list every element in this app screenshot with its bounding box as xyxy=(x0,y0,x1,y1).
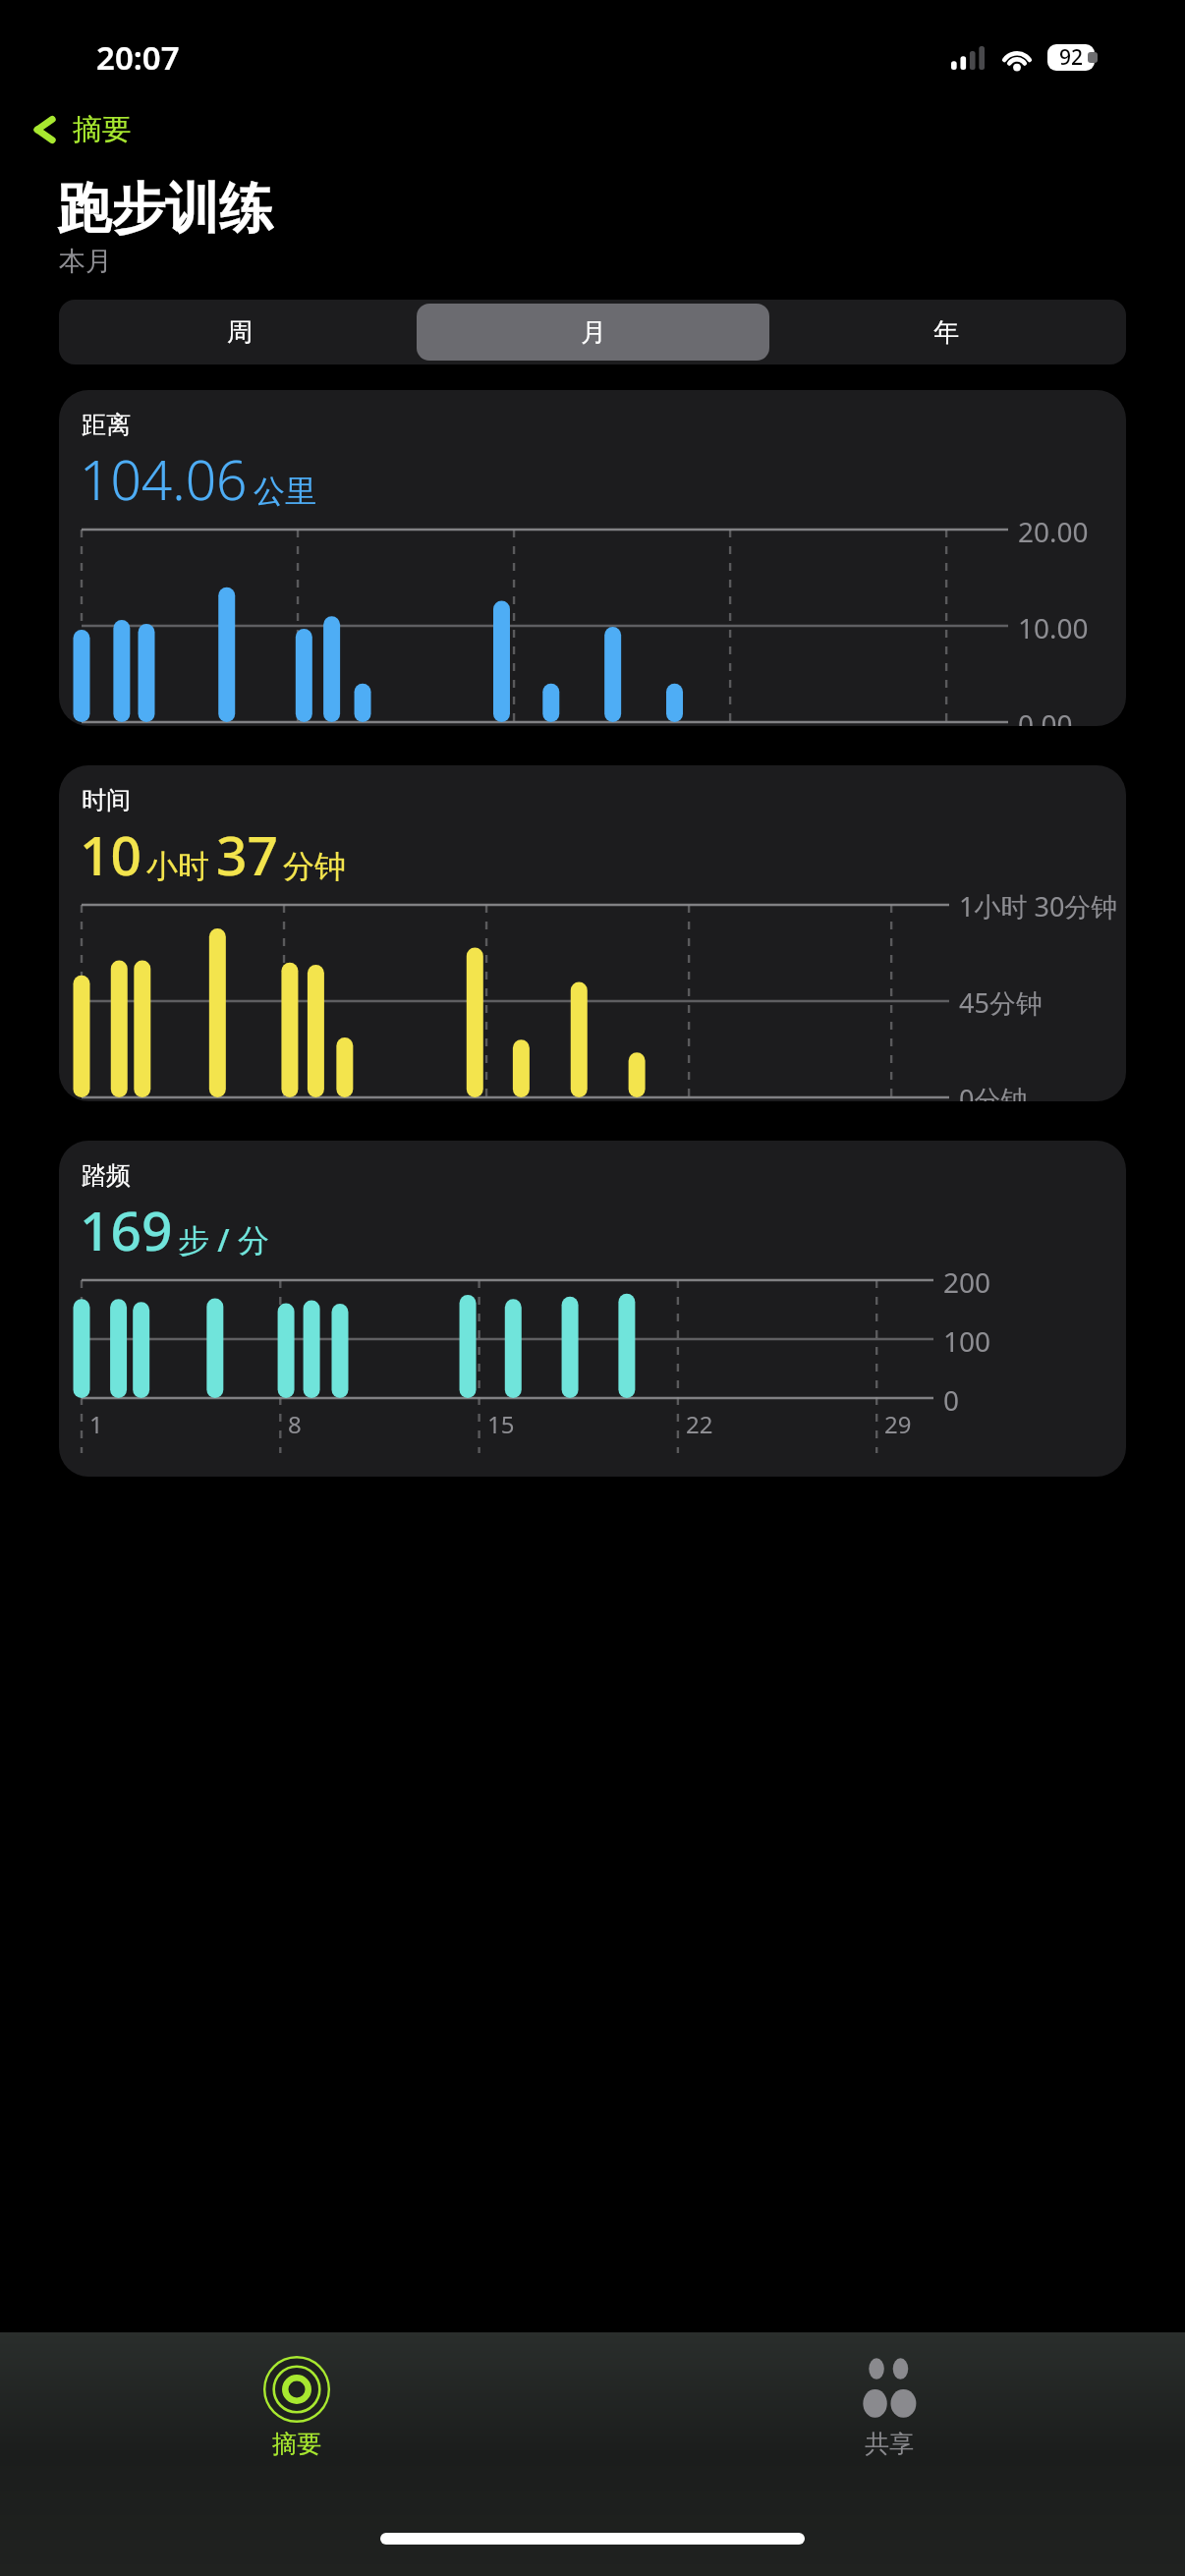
staticText: 周 xyxy=(227,316,253,349)
staticText: 时间 xyxy=(82,785,131,815)
staticText: 104.06 xyxy=(80,442,248,516)
button[interactable]: 时间 xyxy=(59,765,1126,1101)
staticText: 共享 xyxy=(865,2429,914,2459)
staticText: 距离 xyxy=(82,410,131,440)
staticText: 20.00 xyxy=(1018,513,1089,550)
button[interactable]: 周 xyxy=(63,304,417,361)
other: 返回 xyxy=(26,106,65,153)
button[interactable]: 踏频 xyxy=(59,1141,1126,1477)
staticText: 踏频 xyxy=(82,1160,131,1191)
button[interactable]: 返回 xyxy=(26,106,132,153)
staticText: 169 xyxy=(80,1193,173,1266)
staticText: 8 xyxy=(288,1408,302,1440)
staticText: 小时 xyxy=(146,847,209,886)
button[interactable]: 距离 xyxy=(59,390,1126,726)
staticText: 200 xyxy=(943,1263,991,1301)
staticText: 跑步训练 xyxy=(57,175,273,243)
staticText: 摘要 xyxy=(73,111,132,148)
staticText: 1 xyxy=(89,1408,103,1440)
staticText: 月 xyxy=(581,316,606,349)
staticText: 45分钟 xyxy=(959,984,1043,1021)
button[interactable]: 摘要 xyxy=(260,2354,333,2459)
staticText: 0 xyxy=(943,1381,960,1419)
button[interactable]: 共享 xyxy=(853,2354,926,2459)
staticText: 92 xyxy=(1059,43,1084,72)
staticText: 本月 xyxy=(59,245,112,278)
staticText: 摘要 xyxy=(272,2429,321,2459)
staticText: 公里 xyxy=(254,472,316,511)
staticText: 10 xyxy=(80,817,141,891)
staticText: 15 xyxy=(487,1408,515,1440)
button[interactable]: 年 xyxy=(769,304,1122,361)
button[interactable]: 月 xyxy=(417,304,769,361)
staticText: 29 xyxy=(884,1408,912,1440)
staticText: 0分钟 xyxy=(959,1081,1028,1101)
staticText: 1小时 30分钟 xyxy=(959,888,1118,924)
staticText: 10.00 xyxy=(1018,609,1089,646)
staticText: 分钟 xyxy=(283,847,346,886)
staticText: 步 / 分 xyxy=(178,1218,269,1261)
staticText: 22 xyxy=(686,1408,713,1440)
staticText: 年 xyxy=(933,316,959,349)
staticText: 37 xyxy=(216,817,278,891)
staticText: 100 xyxy=(943,1322,991,1360)
staticText: 20:07 xyxy=(96,35,180,80)
staticText: 0.00 xyxy=(1018,705,1073,726)
